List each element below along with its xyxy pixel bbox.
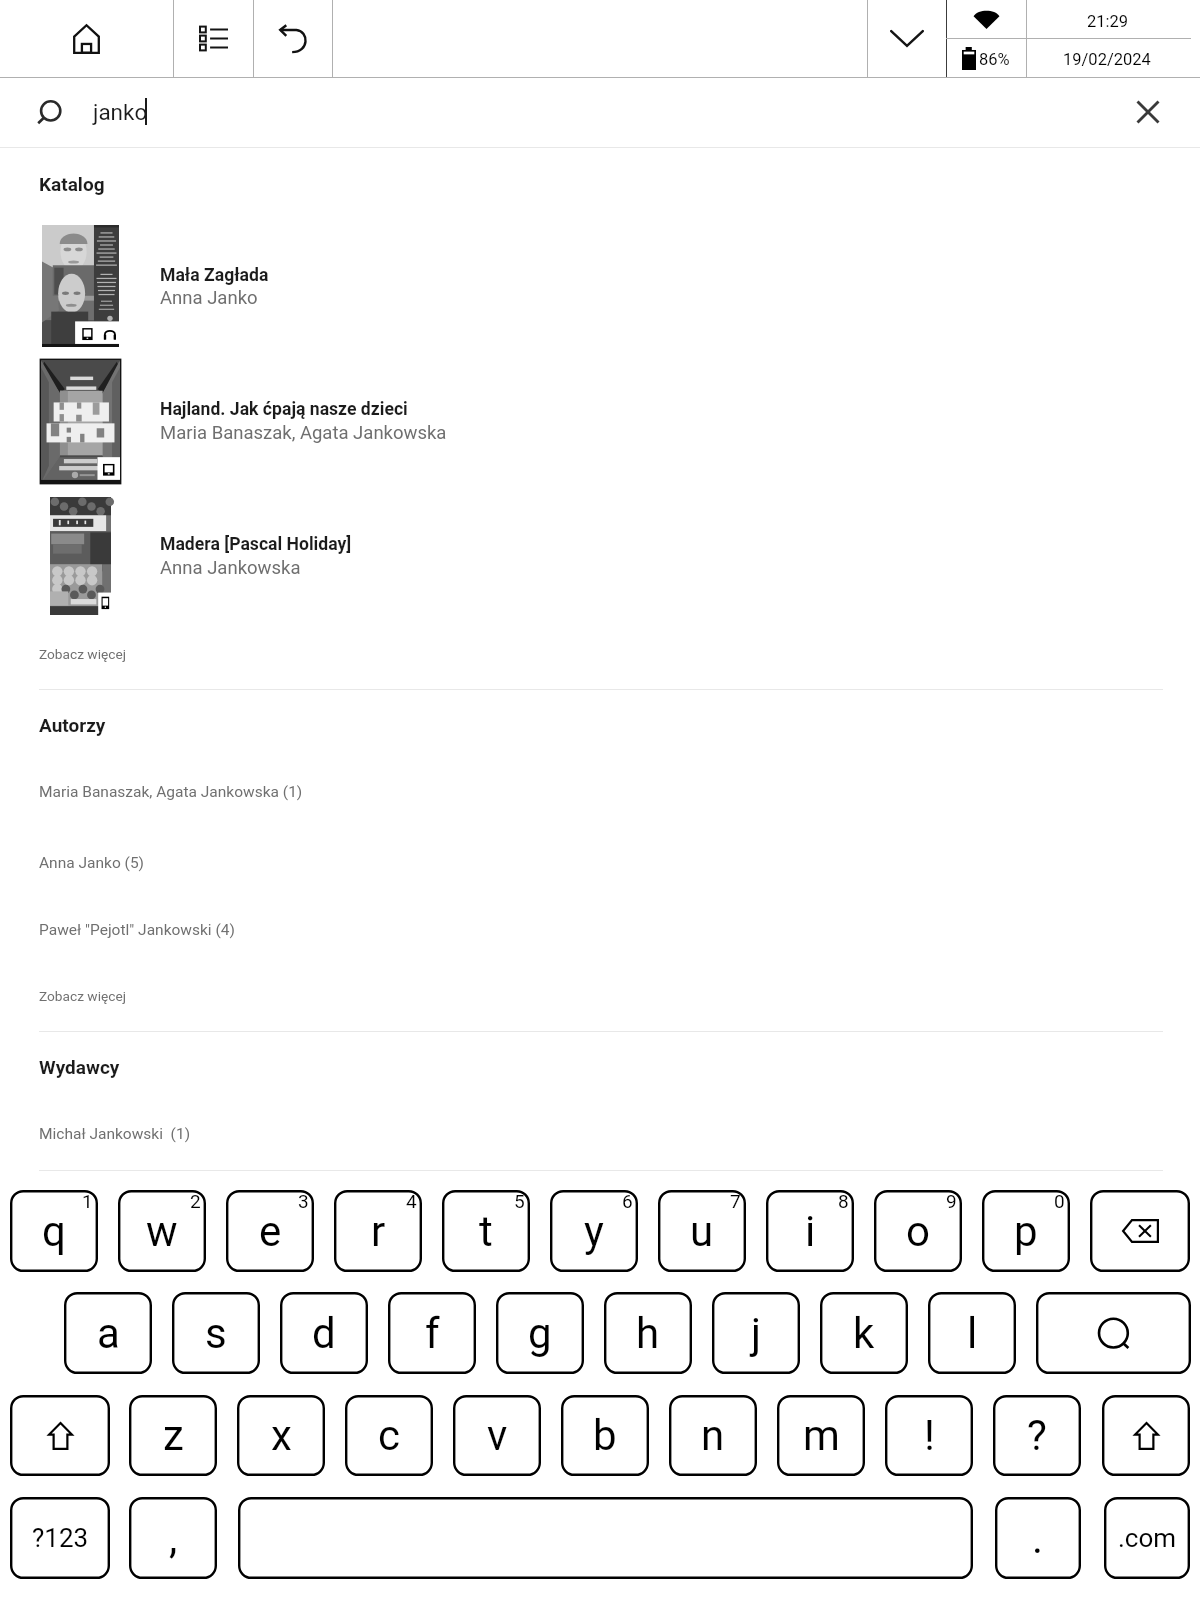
staticText: Autorzy bbox=[39, 714, 106, 736]
staticText: d bbox=[312, 1309, 336, 1358]
button[interactable] bbox=[0, 492, 1200, 620]
staticText: 6 bbox=[622, 1190, 633, 1212]
button[interactable]: y bbox=[550, 1190, 638, 1272]
button[interactable]: v bbox=[453, 1395, 541, 1476]
staticText: a bbox=[97, 1309, 120, 1358]
button[interactable]: Zobacz więcej bbox=[39, 988, 126, 1004]
button[interactable]: Search bbox=[1036, 1292, 1191, 1374]
staticText: e bbox=[259, 1207, 282, 1256]
button[interactable]: r bbox=[334, 1190, 422, 1272]
button[interactable]: h bbox=[604, 1292, 692, 1374]
staticText: u bbox=[690, 1207, 714, 1256]
staticText: 86% bbox=[979, 50, 1010, 69]
staticText: , bbox=[169, 1514, 178, 1563]
staticText: t bbox=[479, 1207, 493, 1256]
staticText: 21:29 bbox=[1087, 12, 1129, 31]
button[interactable]: c bbox=[345, 1395, 433, 1476]
staticText: Anna Jankowska bbox=[160, 557, 301, 579]
staticText: Hajland. Jak ćpają nasze dzieci bbox=[160, 399, 408, 420]
staticText: z bbox=[163, 1411, 184, 1460]
button[interactable]: Shift bbox=[1102, 1395, 1190, 1476]
button[interactable]: w bbox=[118, 1190, 206, 1272]
button[interactable]: ! bbox=[885, 1395, 973, 1476]
button[interactable] bbox=[0, 354, 1200, 488]
button[interactable]: e bbox=[226, 1190, 314, 1272]
staticText: i bbox=[805, 1207, 816, 1256]
staticText: f bbox=[425, 1309, 440, 1358]
button[interactable]: m bbox=[777, 1395, 865, 1476]
staticText: Maria Banaszak, Agata Jankowska bbox=[160, 422, 447, 444]
staticText: h bbox=[636, 1309, 660, 1358]
button[interactable]: Zobacz więcej bbox=[39, 646, 126, 662]
button[interactable]: Clear search bbox=[1114, 78, 1182, 146]
button[interactable]: .com bbox=[1104, 1497, 1190, 1579]
staticText: c bbox=[378, 1411, 400, 1460]
staticText: Michał Jankowski (1) bbox=[39, 1125, 191, 1143]
staticText: w bbox=[146, 1207, 178, 1256]
button[interactable]: s bbox=[172, 1292, 260, 1374]
button[interactable]: d bbox=[280, 1292, 368, 1374]
button[interactable]: i bbox=[766, 1190, 854, 1272]
button[interactable]: Anna Janko (5) bbox=[39, 854, 145, 872]
staticText: 8 bbox=[838, 1190, 849, 1212]
staticText: y bbox=[584, 1207, 604, 1256]
button[interactable]: Maria Banaszak, Agata Jankowska (1) bbox=[39, 783, 303, 801]
button[interactable]: f bbox=[388, 1292, 476, 1374]
staticText: b bbox=[593, 1411, 617, 1460]
button[interactable]: Michał Jankowski (1) bbox=[39, 1125, 191, 1143]
button[interactable]: Expand bbox=[868, 0, 946, 77]
staticText: Anna Janko bbox=[160, 287, 258, 309]
staticText: . bbox=[1032, 1514, 1044, 1563]
staticText: Maria Banaszak, Agata Jankowska (1) bbox=[39, 783, 303, 801]
staticText: Zobacz więcej bbox=[39, 646, 126, 662]
staticText: ?123 bbox=[32, 1523, 89, 1553]
button[interactable]: Backspace bbox=[1090, 1190, 1190, 1272]
button[interactable]: ?123 bbox=[10, 1497, 110, 1579]
staticText: v bbox=[487, 1411, 508, 1460]
staticText: s bbox=[205, 1309, 227, 1358]
button[interactable]: a bbox=[64, 1292, 152, 1374]
button[interactable]: x bbox=[237, 1395, 325, 1476]
staticText: 1 bbox=[82, 1190, 93, 1212]
button[interactable] bbox=[0, 218, 1200, 352]
button[interactable]: u bbox=[658, 1190, 746, 1272]
staticText: Katalog bbox=[39, 173, 105, 195]
staticText: Paweł "Pejotl" Jankowski (4) bbox=[39, 921, 235, 939]
staticText: ! bbox=[924, 1411, 935, 1460]
staticText: o bbox=[906, 1207, 930, 1256]
staticText: p bbox=[1014, 1207, 1038, 1256]
button[interactable]: g bbox=[496, 1292, 584, 1374]
button[interactable]: ? bbox=[993, 1395, 1081, 1476]
button[interactable]: j bbox=[712, 1292, 800, 1374]
button[interactable]: Home bbox=[0, 0, 173, 77]
staticText: janko bbox=[93, 99, 148, 125]
button[interactable]: , bbox=[129, 1497, 217, 1579]
button[interactable]: l bbox=[928, 1292, 1016, 1374]
staticText: Mała Zagłada bbox=[160, 265, 269, 286]
button[interactable]: Paweł "Pejotl" Jankowski (4) bbox=[39, 921, 235, 939]
staticText: 3 bbox=[298, 1190, 309, 1212]
button[interactable]: Back bbox=[254, 0, 332, 77]
staticText: g bbox=[528, 1309, 552, 1358]
button[interactable]: z bbox=[129, 1395, 217, 1476]
button[interactable]: Shift bbox=[10, 1395, 110, 1476]
staticText: 4 bbox=[406, 1190, 417, 1212]
button[interactable]: q bbox=[10, 1190, 98, 1272]
button[interactable]: k bbox=[820, 1292, 908, 1374]
staticText: q bbox=[42, 1207, 66, 1256]
button[interactable]: b bbox=[561, 1395, 649, 1476]
staticText: 9 bbox=[946, 1190, 957, 1212]
button[interactable]: . bbox=[995, 1497, 1081, 1579]
staticText: 0 bbox=[1054, 1190, 1065, 1212]
button[interactable]: t bbox=[442, 1190, 530, 1272]
staticText: 2 bbox=[190, 1190, 201, 1212]
staticText: l bbox=[967, 1309, 978, 1358]
button[interactable]: o bbox=[874, 1190, 962, 1272]
staticText: m bbox=[803, 1411, 840, 1460]
staticText: Zobacz więcej bbox=[39, 988, 126, 1004]
staticText: ? bbox=[1027, 1411, 1047, 1460]
button[interactable]: Library bbox=[174, 0, 253, 77]
button[interactable]: Space bbox=[238, 1497, 973, 1579]
button[interactable]: p bbox=[982, 1190, 1070, 1272]
button[interactable]: n bbox=[669, 1395, 757, 1476]
